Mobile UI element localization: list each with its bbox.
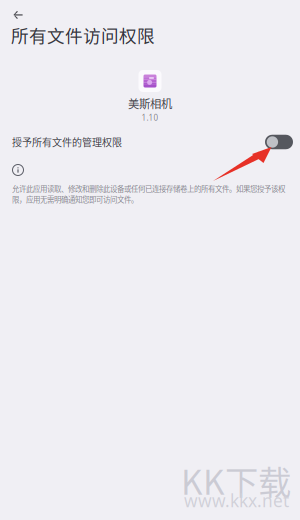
- staticText: 允许此应用读取、修改和删除此设备或任何已连接存储卷上的所有文件。如果您授予该权限…: [12, 183, 285, 205]
- staticText: 所有文件访问权限: [11, 22, 155, 47]
- staticText: www.kkx.net: [184, 489, 289, 512]
- staticText: KK下载: [181, 456, 291, 504]
- staticText: 授予所有文件的管理权限: [12, 135, 122, 149]
- button[interactable]: 返回: [5, 5, 31, 25]
- staticText: 美斯相机: [128, 95, 172, 111]
- button[interactable]: 授予所有文件的管理权限: [0, 129, 300, 155]
- staticText: 1.10: [141, 112, 158, 123]
